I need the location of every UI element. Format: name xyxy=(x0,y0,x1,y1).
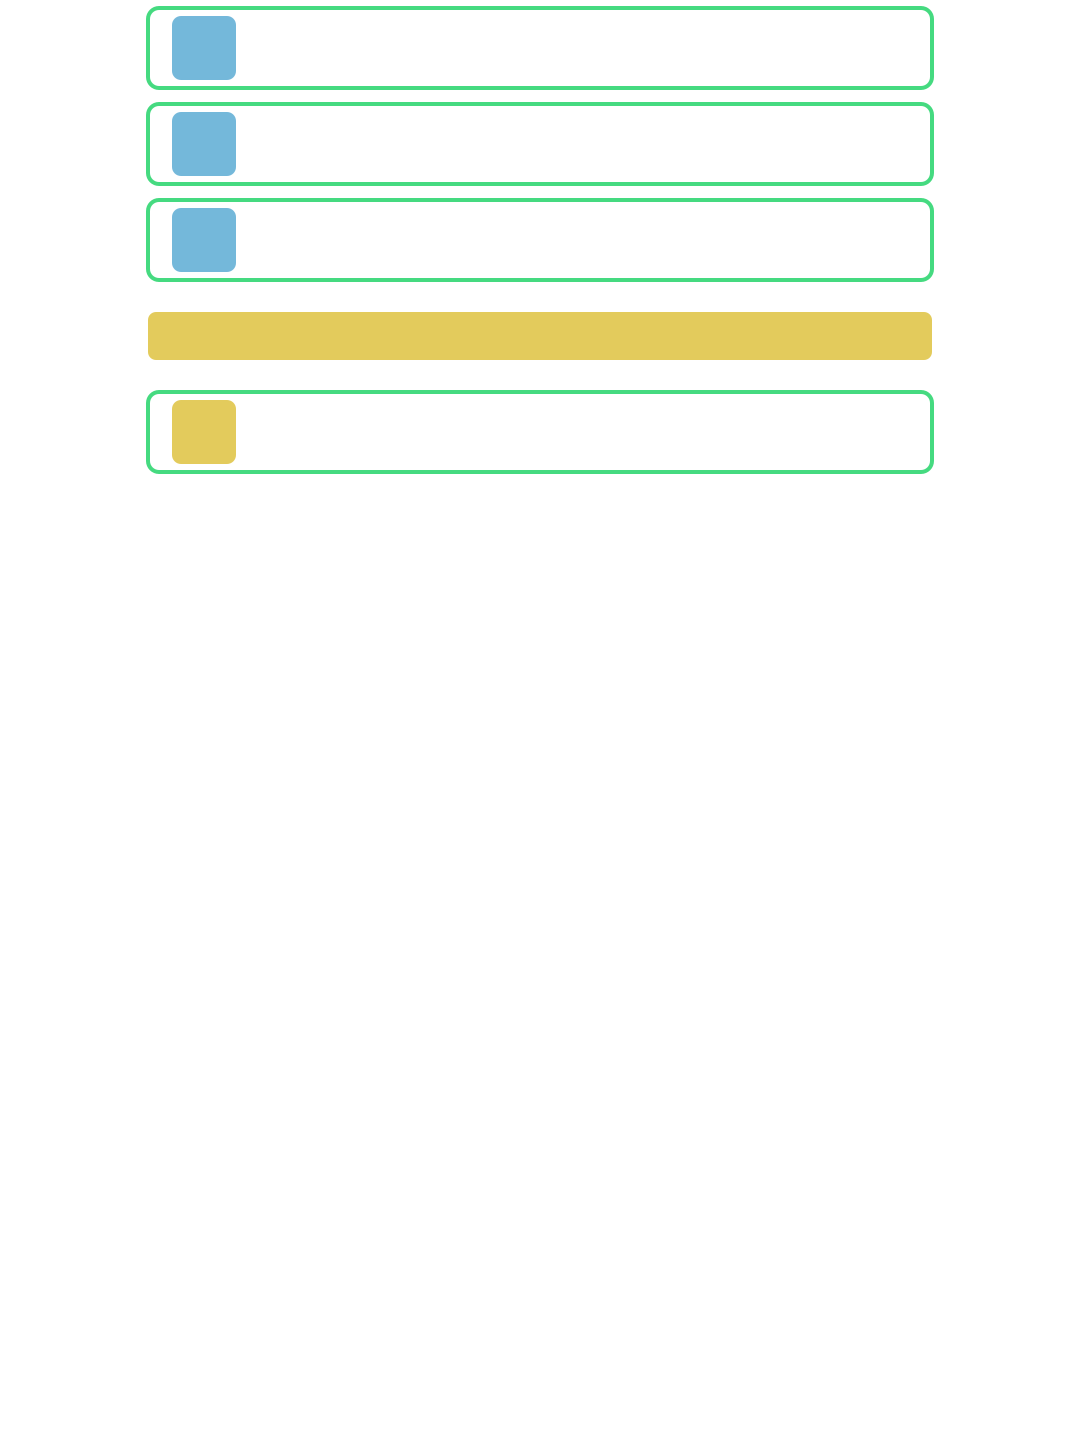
button[interactable]: Item 1 xyxy=(148,8,932,88)
button[interactable]: Continue xyxy=(148,312,932,360)
button[interactable]: Item 4 xyxy=(148,392,932,472)
button[interactable]: Item 2 xyxy=(148,104,932,184)
button[interactable]: Item 3 xyxy=(148,200,932,280)
